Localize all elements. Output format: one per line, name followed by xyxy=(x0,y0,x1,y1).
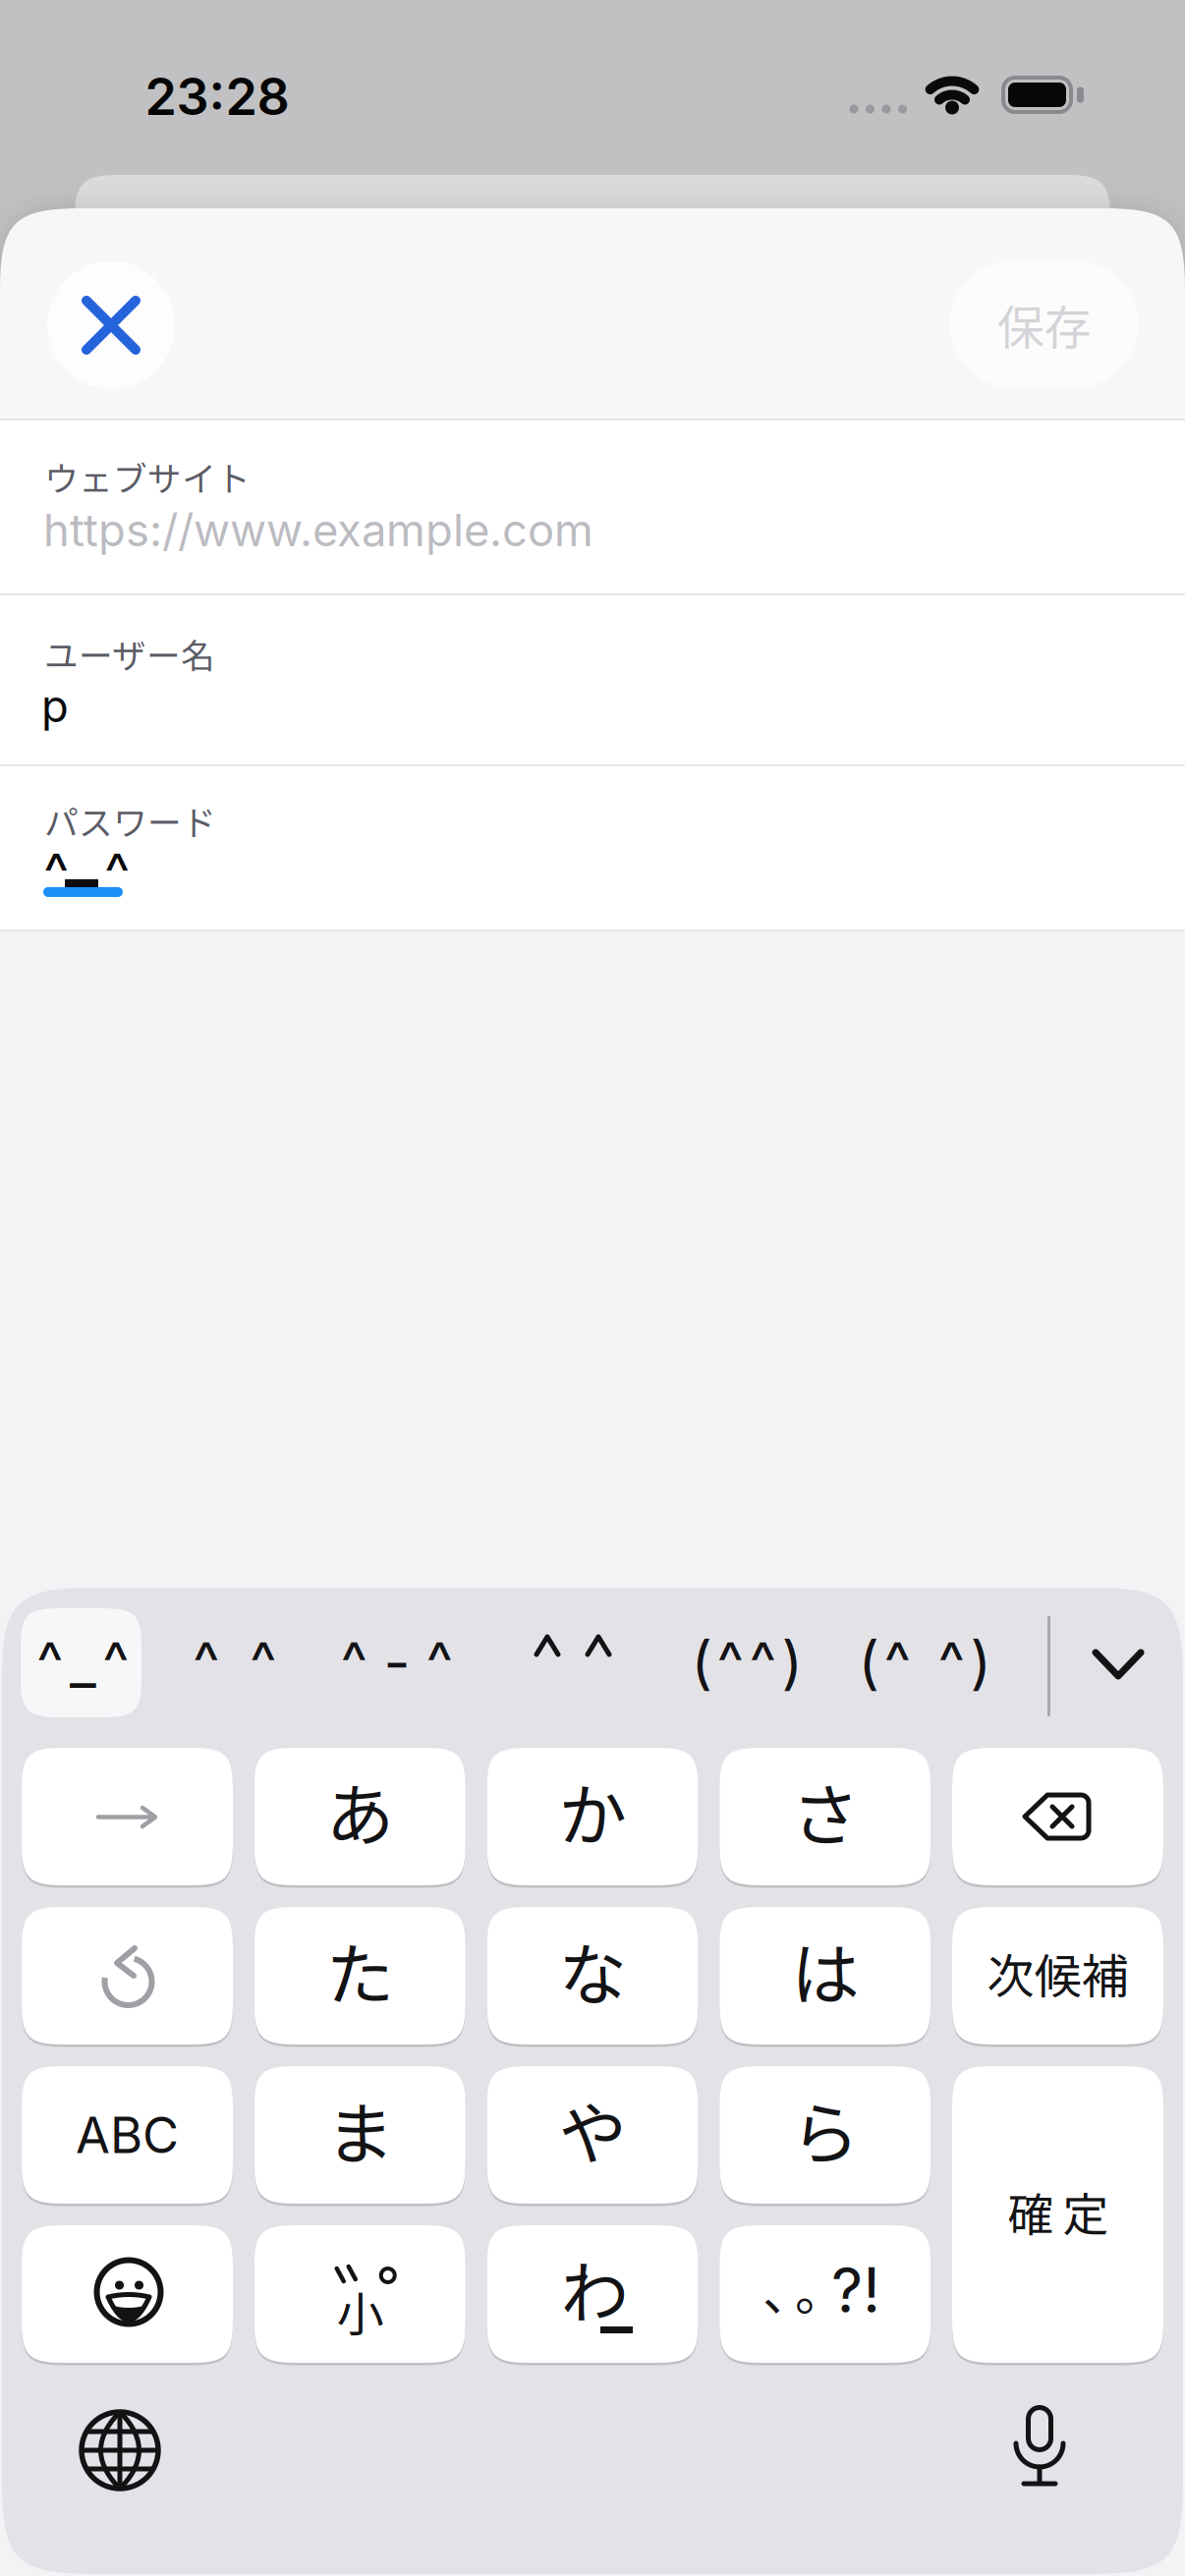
button[interactable]: (^^) xyxy=(691,1627,802,1697)
button[interactable]: 削除 xyxy=(952,1748,1163,1885)
staticText: や xyxy=(559,2080,626,2178)
button[interactable]: ^_^ xyxy=(21,1608,141,1717)
staticText: 次候補 xyxy=(987,1939,1129,2007)
button[interactable]: カーソルを移動 xyxy=(22,1748,233,1885)
button[interactable]: ら xyxy=(719,2066,931,2204)
staticText: さ xyxy=(791,1761,859,1860)
button[interactable]: 閉じる xyxy=(47,261,175,389)
button[interactable]: ^^ xyxy=(193,1627,277,1697)
button[interactable]: 元に戻す xyxy=(22,1907,233,2044)
staticText: ユーザー名 xyxy=(44,629,215,678)
staticText: 23:28 xyxy=(145,65,289,127)
button[interactable]: 絵文字 xyxy=(22,2225,233,2363)
button[interactable]: ^ ^ xyxy=(533,1621,613,1670)
button[interactable]: 次のキーボード xyxy=(73,2403,167,2497)
staticText: は xyxy=(791,1921,859,2019)
staticText: ^-^ xyxy=(340,1627,453,1697)
staticText: (^ ^) xyxy=(858,1627,991,1697)
staticText: ^_^ xyxy=(36,1627,130,1697)
button[interactable]: 音声入力 xyxy=(1010,2399,1069,2493)
button[interactable]: ABC xyxy=(22,2066,233,2204)
staticText: ^^ xyxy=(43,839,130,906)
staticText: た xyxy=(326,1921,394,2019)
button[interactable]: な xyxy=(487,1907,698,2044)
staticText: 小 xyxy=(337,2277,384,2345)
staticText: ABC xyxy=(76,2105,179,2165)
staticText: か xyxy=(559,1761,626,1860)
button[interactable]: 濁点・小文字 xyxy=(254,2225,466,2363)
button[interactable]: ま xyxy=(254,2066,466,2204)
staticText: 保存 xyxy=(997,290,1091,358)
staticText: ウェブサイト xyxy=(44,452,251,501)
button[interactable]: は xyxy=(719,1907,931,2044)
staticText: パスワード xyxy=(44,796,216,845)
staticText: あ xyxy=(326,1761,394,1860)
staticText: 、。 xyxy=(762,2253,845,2325)
button[interactable]: 確定 xyxy=(952,2066,1163,2363)
staticText: ^^ xyxy=(193,1627,277,1697)
button[interactable]: さ xyxy=(719,1748,931,1885)
button[interactable]: た xyxy=(254,1907,466,2044)
button[interactable]: 保存 xyxy=(950,260,1138,388)
staticText: https://www.example.com xyxy=(43,503,593,557)
staticText: ?! xyxy=(831,2253,880,2327)
button[interactable]: ^-^ xyxy=(340,1627,453,1697)
button[interactable]: あ xyxy=(254,1748,466,1885)
button[interactable]: キーボードを閉じる xyxy=(1089,1640,1148,1689)
staticText: ま xyxy=(326,2080,394,2178)
staticText: ら xyxy=(791,2080,859,2178)
button[interactable]: 、。 xyxy=(719,2225,931,2363)
staticText: な xyxy=(559,1921,626,2019)
button[interactable]: (^ ^) xyxy=(858,1627,991,1697)
button[interactable]: 次候補 xyxy=(952,1907,1163,2044)
button[interactable]: や xyxy=(487,2066,698,2204)
staticText: p xyxy=(41,679,69,733)
button[interactable]: わ xyxy=(487,2225,698,2363)
button[interactable]: か xyxy=(487,1748,698,1885)
staticText: 確定 xyxy=(1008,2178,1109,2245)
staticText: わ xyxy=(561,2239,628,2337)
staticText: (^^) xyxy=(691,1627,802,1697)
